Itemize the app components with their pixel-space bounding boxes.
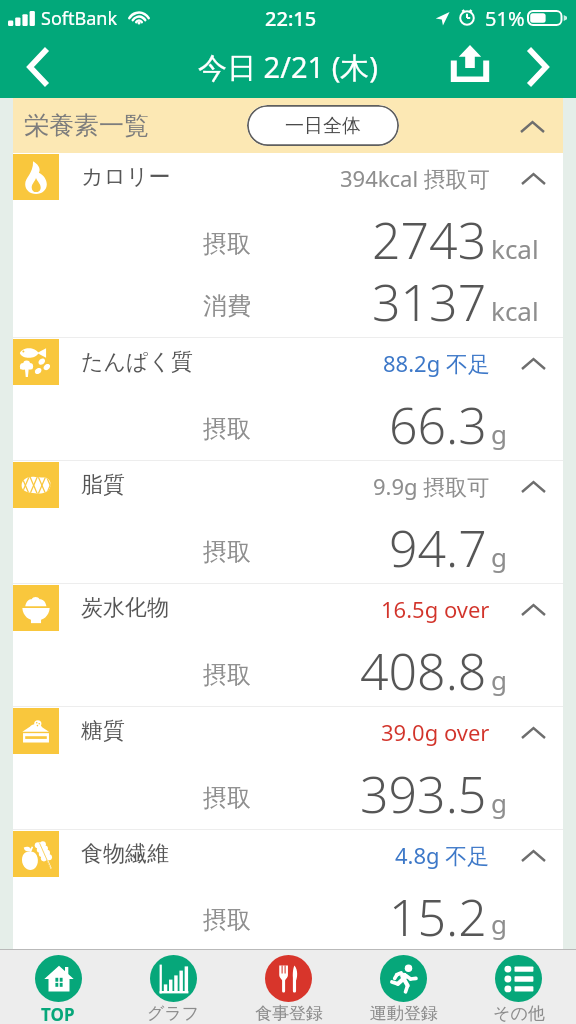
staticText: 4.8g 不足: [395, 840, 490, 870]
button[interactable]: 食物繊維: [13, 830, 563, 890]
staticText: 88.2g 不足: [383, 348, 490, 378]
staticText: 食事登録: [255, 1003, 323, 1024]
staticText: 炭水化物: [81, 594, 169, 622]
button[interactable]: Share: [438, 36, 502, 98]
staticText: 摂取: [203, 783, 251, 813]
button[interactable]: Collapse section: [509, 103, 555, 149]
button[interactable]: 脂質: [13, 461, 563, 521]
button[interactable]: 糖質: [13, 707, 563, 767]
staticText: 摂取: [203, 229, 251, 259]
staticText: 408.8: [360, 637, 487, 699]
button[interactable]: 食事登録: [231, 950, 346, 1024]
staticText: kcal: [491, 231, 539, 266]
staticText: 394kcal 摂取可: [340, 163, 490, 193]
staticText: 9.9g 摂取可: [373, 471, 490, 501]
staticText: 摂取: [203, 660, 251, 690]
button[interactable]: 一日全体: [247, 105, 399, 146]
button[interactable]: 運動登録: [346, 950, 461, 1024]
staticText: g: [491, 662, 507, 697]
staticText: たんぱく質: [81, 348, 194, 376]
staticText: その他: [493, 1003, 545, 1024]
button[interactable]: その他: [461, 950, 576, 1024]
button[interactable]: たんぱく質: [13, 338, 563, 398]
staticText: SoftBank: [41, 6, 117, 31]
staticText: 摂取: [203, 537, 251, 567]
button[interactable]: グラフ: [116, 950, 231, 1024]
staticText: kcal: [491, 293, 539, 328]
staticText: グラフ: [147, 1003, 200, 1024]
button[interactable]: 炭水化物: [13, 584, 563, 644]
button[interactable]: TOP: [0, 950, 116, 1024]
staticText: 脂質: [81, 471, 125, 499]
staticText: g: [491, 906, 507, 941]
staticText: 16.5g over: [381, 594, 490, 624]
staticText: TOP: [41, 1003, 75, 1024]
staticText: 今日 2/21 (木): [198, 47, 379, 87]
staticText: 糖質: [81, 717, 125, 745]
staticText: 栄養素一覧: [24, 110, 149, 141]
button[interactable]: Previous day: [0, 36, 64, 98]
staticText: g: [491, 785, 507, 820]
staticText: 運動登録: [370, 1003, 438, 1024]
button[interactable]: Next day: [512, 36, 576, 98]
staticText: 消費: [203, 291, 251, 321]
staticText: 摂取: [203, 905, 251, 935]
staticText: 393.5: [360, 760, 487, 822]
staticText: 3137: [372, 268, 487, 330]
staticText: 22:15: [265, 5, 317, 32]
staticText: 食物繊維: [81, 840, 169, 868]
staticText: 2743: [372, 206, 487, 268]
staticText: 66.3: [389, 391, 487, 453]
button[interactable]: 栄養素一覧: [13, 98, 563, 153]
staticText: 94.7: [389, 514, 487, 576]
staticText: 15.2: [389, 883, 487, 942]
staticText: g: [491, 539, 507, 574]
staticText: 一日全体: [285, 114, 361, 138]
staticText: 51%: [485, 5, 525, 32]
staticText: カロリー: [81, 163, 171, 191]
staticText: 摂取: [203, 414, 251, 444]
staticText: 39.0g over: [381, 717, 490, 747]
button[interactable]: カロリー: [13, 153, 563, 213]
staticText: g: [491, 416, 507, 451]
